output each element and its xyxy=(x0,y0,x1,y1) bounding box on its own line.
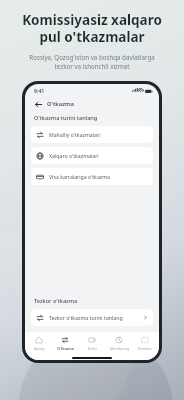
staticText: O'tkazma turini tanlang xyxy=(34,114,98,122)
button[interactable]: Asosiy xyxy=(26,332,52,355)
staticText: 9:41 xyxy=(34,87,45,94)
staticText: Tezkor o'tkazma turini tanlang xyxy=(49,314,123,321)
staticText: O'tkazma xyxy=(57,346,74,351)
button[interactable]: Back xyxy=(33,99,44,110)
staticText: Tezkor o'tkazma xyxy=(34,297,78,305)
staticText: Xalqaro o'tkazmalari xyxy=(49,152,99,159)
button[interactable]: Xalqaro o'tkazmalari xyxy=(31,147,153,164)
staticText: Asosiy xyxy=(34,346,45,351)
staticText: Kartalar xyxy=(138,346,152,351)
button[interactable]: To'lov xyxy=(79,332,105,355)
staticText: Monitoring xyxy=(110,346,129,351)
staticText: O'tkazma xyxy=(47,100,74,108)
staticText: Rossiya, Qozog'iston va boshqa davlatlar… xyxy=(8,53,176,71)
staticText: Mahalliy o'tkazmalari xyxy=(49,131,101,138)
button[interactable]: O'tkazma xyxy=(52,332,78,355)
button[interactable]: Tezkor o'tkazma turini tanlang xyxy=(31,309,153,326)
button[interactable]: Kartalar xyxy=(132,332,158,355)
staticText: Visa kartalariga o'tkazma xyxy=(49,173,110,180)
staticText: To'lov xyxy=(87,346,97,351)
button[interactable]: Mahalliy o'tkazmalari xyxy=(31,126,153,143)
button[interactable]: Visa kartalariga o'tkazma xyxy=(31,168,153,185)
staticText: Komissiyasiz xalqaro pul o'tkazmalar xyxy=(10,11,174,46)
button[interactable]: Monitoring xyxy=(106,332,132,355)
